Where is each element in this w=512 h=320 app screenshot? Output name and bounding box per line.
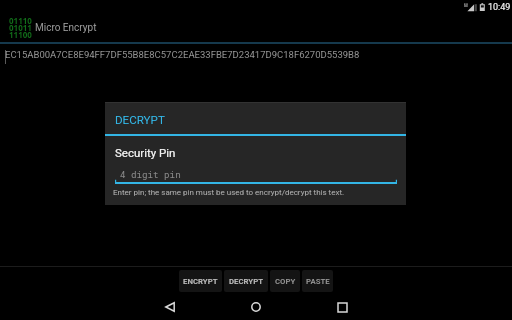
button[interactable]: 4 digit pin (115, 168, 397, 184)
staticText: Enter pin; the same pin must be used to … (113, 188, 345, 197)
staticText: DECRYPT (229, 277, 264, 286)
staticText: COPY (275, 277, 296, 286)
button[interactable]: Recent apps (329, 294, 355, 320)
staticText: ENCRYPT (183, 277, 218, 286)
button[interactable]: Back (157, 294, 183, 320)
button[interactable]: EC15AB00A7CE8E94FF7DF55B8E8C57C2EAE33FBE… (0, 44, 512, 84)
button[interactable]: PASTE (302, 270, 333, 292)
staticText: Micro Encrypt (35, 22, 97, 34)
button[interactable]: ENCRYPT (179, 270, 222, 292)
staticText: 10:49 (488, 2, 511, 13)
staticText: PASTE (306, 277, 330, 286)
staticText: 4 digit pin (120, 168, 181, 180)
button[interactable]: DECRYPT (224, 270, 268, 292)
staticText: EC15AB00A7CE8E94FF7DF55B8E8C57C2EAE33FBE… (5, 49, 360, 60)
staticText: DECRYPT (115, 113, 165, 127)
button[interactable]: Home (243, 294, 269, 320)
staticText: 01110 01011 11100 (9, 15, 32, 40)
button[interactable]: COPY (270, 270, 300, 292)
staticText: Security Pin (115, 146, 176, 159)
